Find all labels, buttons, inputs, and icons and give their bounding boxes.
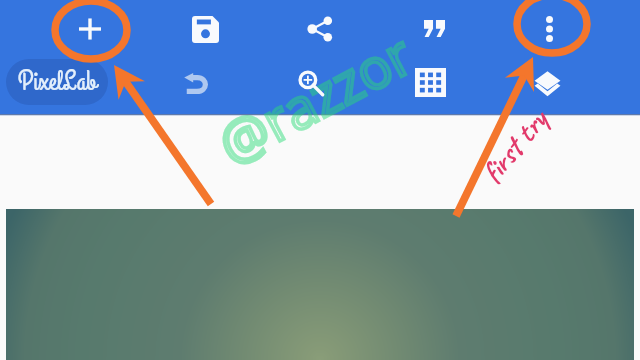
button[interactable]: Image canvas bbox=[6, 209, 634, 360]
button[interactable]: Layers bbox=[523, 59, 571, 107]
button[interactable]: Undo bbox=[171, 59, 219, 107]
button[interactable]: Zoom in bbox=[287, 59, 335, 107]
button[interactable]: Share bbox=[296, 5, 344, 53]
button[interactable]: More options bbox=[525, 5, 573, 53]
button[interactable]: Add bbox=[66, 5, 114, 53]
button[interactable]: Add text bbox=[410, 4, 458, 52]
button[interactable]: Save bbox=[181, 5, 229, 53]
button[interactable]: Grid bbox=[406, 58, 454, 106]
staticText: PixelLab bbox=[18, 63, 97, 100]
button[interactable]: PixelLab bbox=[6, 59, 108, 105]
